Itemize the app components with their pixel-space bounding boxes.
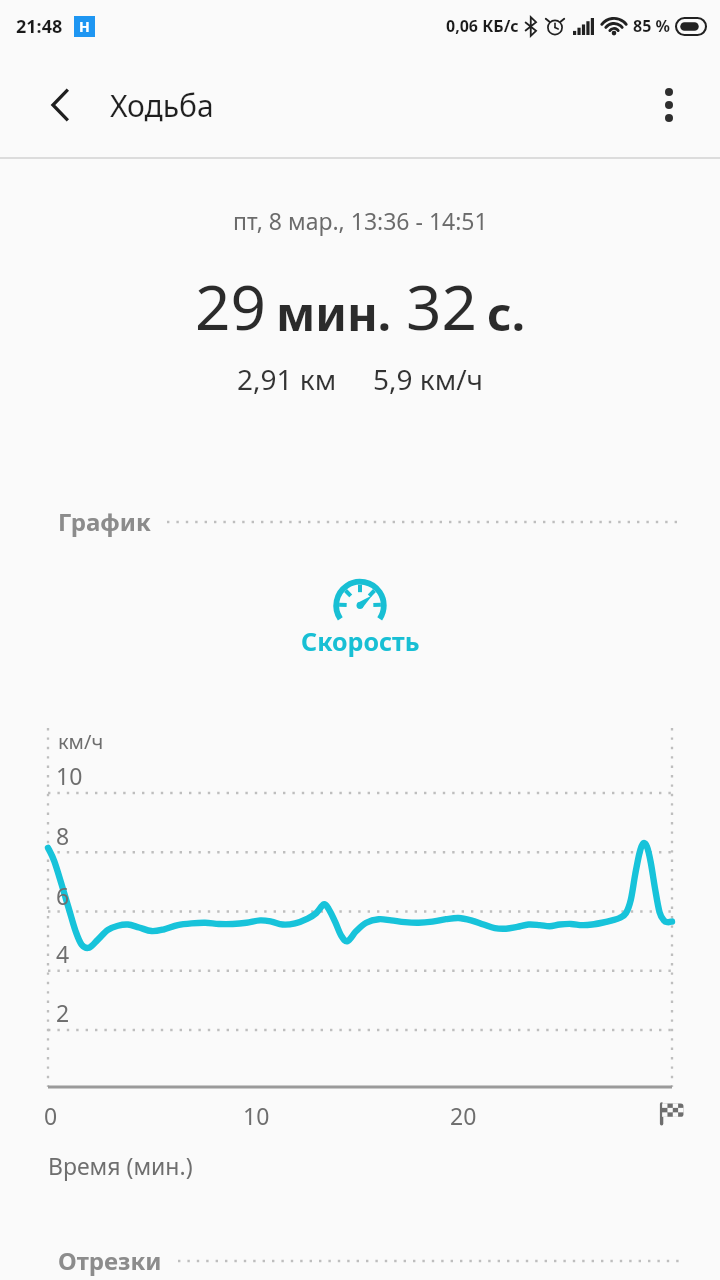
staticText: Ходьба	[110, 85, 214, 126]
staticText: 4	[56, 938, 70, 969]
staticText: 20	[450, 1100, 477, 1131]
staticText: 5,9 км/ч	[373, 360, 484, 398]
button[interactable]: Назад	[36, 81, 84, 129]
staticText: 10	[243, 1100, 270, 1131]
staticText: 2,91 км	[237, 360, 337, 398]
staticText: с.	[487, 281, 525, 345]
button[interactable]: Скорость	[0, 570, 720, 658]
staticText: 29	[195, 264, 266, 348]
staticText: 2	[56, 997, 70, 1028]
staticText: 8	[56, 820, 70, 851]
staticText: пт, 8 мар., 13:36 - 14:51	[233, 205, 488, 236]
staticText: H	[79, 17, 90, 36]
staticText: 21:48	[16, 14, 63, 39]
staticText: График	[58, 505, 151, 538]
staticText: Скорость	[301, 624, 420, 658]
staticText: 0,06 КБ/с	[446, 15, 519, 37]
staticText: км/ч	[58, 728, 104, 755]
staticText: 85 %	[633, 15, 670, 37]
staticText: Отрезки	[58, 1244, 162, 1277]
staticText: Время (мин.)	[48, 1150, 193, 1181]
staticText: 6	[56, 880, 70, 911]
button[interactable]: Ещё	[644, 80, 694, 130]
staticText: мин.	[276, 281, 392, 345]
staticText: 32	[406, 264, 477, 348]
staticText: 0	[44, 1100, 58, 1131]
staticText: 10	[56, 760, 83, 791]
